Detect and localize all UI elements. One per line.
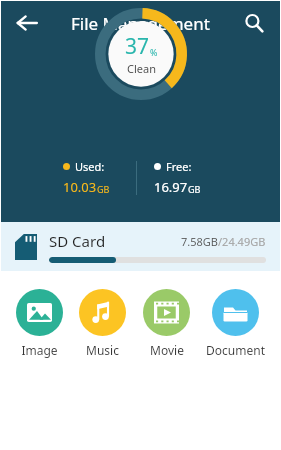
staticText: 7.58GB <box>181 234 218 249</box>
button[interactable]: Movie <box>141 289 192 358</box>
staticText: 37 <box>125 32 150 61</box>
staticText: 16.97 <box>154 178 188 196</box>
staticText: Free: <box>166 159 192 174</box>
button[interactable]: SD Card <box>1 222 280 271</box>
staticText: Used: <box>75 159 105 174</box>
staticText: Music <box>86 342 119 358</box>
staticText: /24.49GB <box>218 234 266 249</box>
staticText: Clean <box>127 61 156 76</box>
staticText: Document <box>206 342 265 358</box>
staticText: SD Card <box>49 231 106 251</box>
button[interactable]: Search <box>234 3 274 43</box>
button[interactable]: Document <box>204 289 267 358</box>
staticText: 10.03 <box>63 178 97 196</box>
staticText: GB <box>188 183 201 195</box>
staticText: Image <box>21 342 58 358</box>
staticText: File Management <box>71 12 210 35</box>
staticText: % <box>150 46 158 58</box>
button[interactable]: Back <box>7 3 47 43</box>
button[interactable]: Music <box>77 289 128 358</box>
button[interactable]: Image <box>14 289 65 358</box>
staticText: Movie <box>150 342 184 358</box>
staticText: GB <box>97 183 110 195</box>
